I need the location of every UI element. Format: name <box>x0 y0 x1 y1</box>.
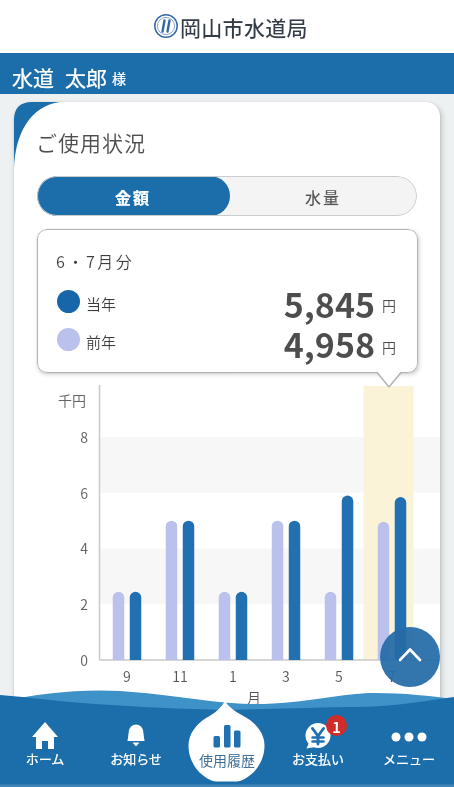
staticText: 円 <box>382 295 396 315</box>
staticText: お知らせ <box>96 749 176 768</box>
staticText: 当年 <box>86 293 117 315</box>
staticText: 1 <box>329 716 344 738</box>
staticText: ご使用状況 <box>36 127 146 157</box>
staticText: 水量 <box>305 185 342 208</box>
staticText: 3 <box>272 666 300 686</box>
staticText: 9 <box>113 666 141 686</box>
staticText: 水道 <box>12 62 54 92</box>
button[interactable] <box>380 627 440 687</box>
button[interactable] <box>273 700 364 787</box>
staticText: 11 <box>166 666 194 686</box>
staticText: 円 <box>382 337 396 357</box>
button[interactable] <box>364 700 454 787</box>
staticText: 1 <box>219 666 247 686</box>
staticText: 使用履歴 <box>187 750 267 770</box>
staticText: 5 <box>325 666 353 686</box>
button[interactable] <box>0 700 91 787</box>
staticText: ホーム <box>5 749 85 768</box>
staticText: 5,845 <box>180 279 375 328</box>
button[interactable] <box>182 700 273 787</box>
staticText: 様 <box>112 68 126 88</box>
staticText: 6 <box>60 483 88 503</box>
staticText: 7 <box>378 666 406 686</box>
staticText: 千円 <box>58 390 86 410</box>
staticText: 4,958 <box>180 319 375 368</box>
staticText: 8 <box>60 427 88 447</box>
staticText: 0 <box>60 650 88 670</box>
staticText: 月 <box>247 687 261 707</box>
staticText: 6・7月分 <box>56 249 135 272</box>
staticText: 4 <box>60 538 88 558</box>
button[interactable] <box>91 700 182 787</box>
staticText: 2 <box>60 594 88 614</box>
staticText: 岡山市水道局 <box>180 12 308 42</box>
staticText: 太郎 <box>65 62 107 92</box>
staticText: 金額 <box>115 185 152 208</box>
staticText: お支払い <box>278 749 358 768</box>
staticText: 前年 <box>86 331 117 353</box>
button[interactable]: 水量 <box>230 176 417 216</box>
button[interactable]: 金額 <box>37 176 230 216</box>
staticText: メニュー <box>369 749 449 768</box>
